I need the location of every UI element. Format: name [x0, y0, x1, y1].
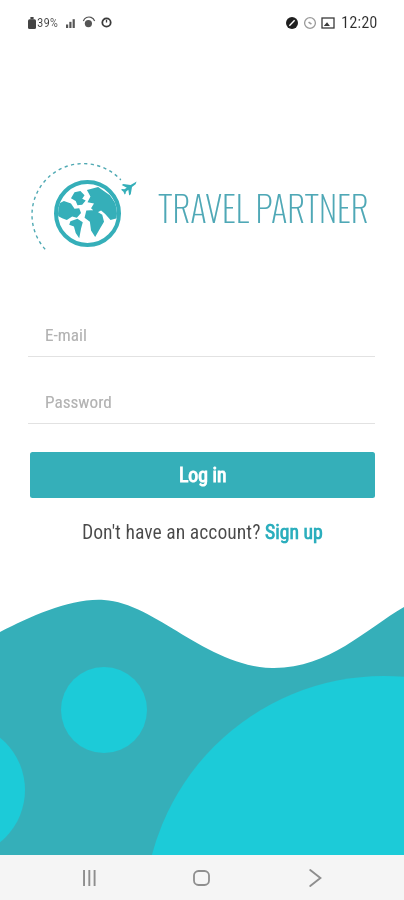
staticText: Sign up [265, 521, 323, 544]
button[interactable]: Sign up [265, 521, 323, 544]
button[interactable]: E-mail [28, 318, 375, 357]
staticText: 12:20 [341, 13, 378, 32]
button[interactable]: Password [28, 385, 375, 424]
staticText: Don't have an account? [82, 521, 265, 544]
staticText: E-mail [45, 325, 87, 345]
staticText: TRAVEL PARTNER [158, 181, 369, 233]
button[interactable]: Home [179, 855, 224, 900]
staticText: Log in [179, 464, 227, 487]
staticText: 39% [37, 15, 59, 30]
button[interactable]: Recent apps [66, 855, 111, 900]
button[interactable]: Log in [30, 452, 375, 498]
button[interactable]: Back [292, 855, 337, 900]
staticText: Password [45, 392, 112, 412]
